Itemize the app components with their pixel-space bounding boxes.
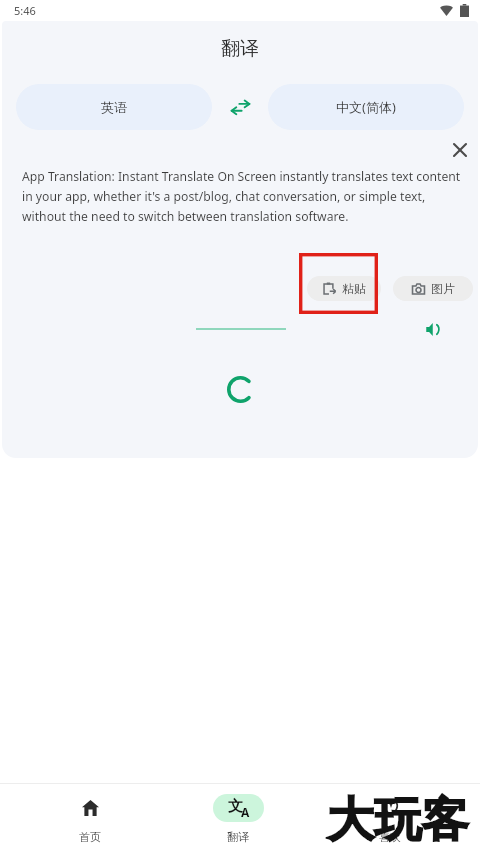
- button[interactable]: Swap languages: [212, 84, 268, 130]
- staticText: 喜欢: [379, 830, 401, 844]
- staticText: 5:46: [14, 3, 36, 18]
- button[interactable]: 粘贴: [307, 276, 381, 301]
- staticText: 翻译: [227, 830, 249, 844]
- staticText: 文: [228, 797, 243, 816]
- staticText: 首页: [79, 830, 101, 844]
- button[interactable]: Speak: [421, 318, 443, 340]
- button[interactable]: 图片: [393, 276, 473, 301]
- staticText: 图片: [431, 281, 455, 296]
- staticText: 英语: [101, 99, 127, 115]
- button[interactable]: 中文(简体): [268, 84, 464, 130]
- button[interactable]: 英语: [16, 84, 212, 130]
- staticText: 粘贴: [342, 281, 366, 296]
- button[interactable]: Close: [446, 136, 474, 164]
- staticText: App Translation: Instant Translate On Sc…: [22, 168, 472, 224]
- button[interactable]: 喜欢: [340, 783, 440, 854]
- button[interactable]: 文: [188, 783, 288, 854]
- staticText: 中文(简体): [336, 98, 396, 116]
- staticText: 翻译: [2, 37, 478, 61]
- staticText: 大玩客: [327, 791, 469, 850]
- button[interactable]: 首页: [40, 783, 140, 854]
- staticText: A: [241, 804, 250, 820]
